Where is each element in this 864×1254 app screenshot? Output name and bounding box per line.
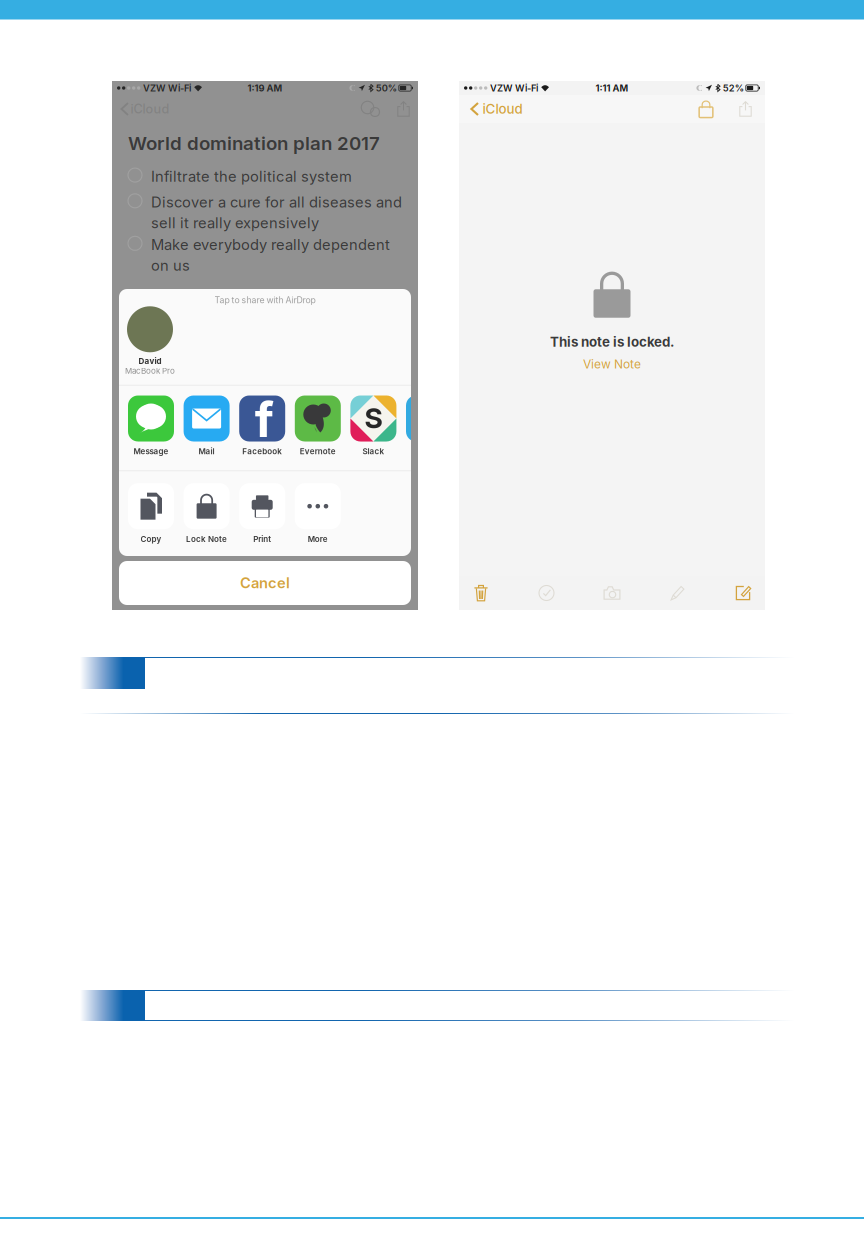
staticText: Mail bbox=[199, 446, 215, 456]
staticText: Lock Note bbox=[186, 534, 227, 544]
staticText: David bbox=[138, 356, 161, 366]
button[interactable]: Cancel bbox=[119, 561, 411, 605]
button[interactable]: Evernote bbox=[295, 395, 341, 456]
staticText: Discover a cure for all diseases and bbox=[151, 193, 402, 211]
staticText: Cancel bbox=[240, 574, 290, 592]
button[interactable]: Markup bbox=[666, 582, 688, 604]
staticText: This note is locked. bbox=[550, 334, 674, 350]
button[interactable]: Mail bbox=[184, 395, 230, 456]
button[interactable]: Camera bbox=[601, 582, 623, 604]
staticText: S bbox=[364, 401, 382, 435]
staticText: View Note bbox=[583, 357, 641, 371]
staticText: 1:11 AM bbox=[595, 82, 628, 94]
staticText: VZW Wi-Fi bbox=[143, 82, 191, 94]
button[interactable]: More bbox=[295, 483, 341, 544]
staticText: Slack bbox=[362, 446, 384, 456]
staticText: Facebook bbox=[242, 446, 282, 456]
button[interactable]: Checklist bbox=[535, 582, 557, 604]
staticText: Copy bbox=[140, 534, 161, 544]
button[interactable]: View Note bbox=[583, 357, 641, 371]
staticText: Tap to share with AirDrop bbox=[214, 295, 315, 305]
button[interactable]: Share bbox=[380, 101, 410, 117]
button[interactable]: S bbox=[350, 395, 396, 456]
staticText: iCloud bbox=[482, 101, 522, 117]
button[interactable]: Message bbox=[128, 395, 174, 456]
button[interactable]: iCloud bbox=[120, 101, 169, 117]
staticText: Evernote bbox=[300, 446, 336, 456]
button[interactable]: David bbox=[121, 306, 179, 376]
button[interactable]: Copy bbox=[128, 483, 174, 544]
button[interactable]: Delete bbox=[470, 582, 492, 604]
staticText: World domination plan 2017 bbox=[128, 132, 380, 155]
staticText: 52% bbox=[723, 82, 744, 94]
staticText: 50% bbox=[376, 82, 397, 94]
button[interactable]: f bbox=[239, 395, 285, 456]
staticText: VZW Wi-Fi bbox=[490, 82, 538, 94]
staticText: MacBook Pro bbox=[125, 366, 175, 376]
staticText: iCloud bbox=[130, 101, 169, 117]
button[interactable]: Print bbox=[239, 483, 285, 544]
staticText: Print bbox=[253, 534, 271, 544]
button[interactable] bbox=[406, 395, 452, 456]
button[interactable]: Collaborate bbox=[362, 100, 380, 117]
staticText: sell it really expensively bbox=[151, 214, 319, 232]
button[interactable]: Lock Note bbox=[697, 100, 715, 118]
staticText: Make everybody really dependent bbox=[151, 236, 390, 253]
button[interactable]: iCloud bbox=[470, 101, 522, 117]
staticText: 1:19 AM bbox=[247, 82, 282, 94]
staticText: f bbox=[255, 390, 274, 449]
button[interactable]: Share bbox=[715, 101, 752, 117]
staticText: Message bbox=[133, 446, 168, 456]
staticText: More bbox=[308, 534, 328, 544]
button[interactable]: Lock Note bbox=[184, 483, 230, 544]
button[interactable]: New Note bbox=[732, 582, 754, 604]
staticText: Infiltrate the political system bbox=[151, 168, 352, 185]
staticText: on us bbox=[151, 257, 190, 274]
